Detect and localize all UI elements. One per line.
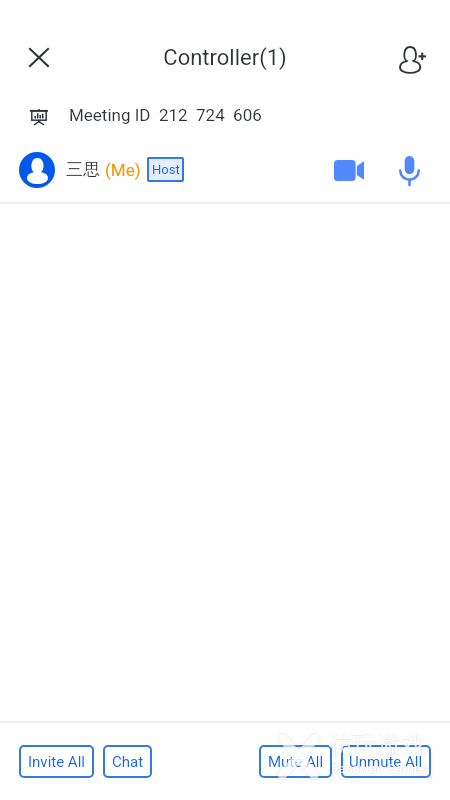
- button[interactable]: Add participant: [392, 38, 434, 80]
- staticText: 仿玩游戏: [328, 730, 424, 760]
- button[interactable]: Invite All: [19, 745, 94, 778]
- staticText: Fengwan Games: [330, 760, 427, 775]
- staticText: (Me): [105, 160, 141, 180]
- button[interactable]: Chat: [103, 745, 152, 778]
- staticText: Host: [152, 162, 180, 177]
- staticText: 仿玩游戏: [328, 732, 424, 762]
- staticText: 仿玩游戏: [329, 731, 425, 761]
- staticText: 三思: [66, 159, 105, 180]
- button[interactable]: Video on: [327, 148, 371, 192]
- button[interactable]: Unmute All: [341, 745, 431, 778]
- staticText: Unmute All: [349, 753, 423, 771]
- staticText: 仿玩游戏: [330, 732, 426, 762]
- staticText: Chat: [112, 753, 144, 771]
- staticText: Fengwan Games: [332, 760, 429, 775]
- staticText: Fengwan Games: [331, 761, 428, 776]
- staticText: 仿玩游戏: [330, 730, 426, 760]
- button[interactable]: Mute All: [259, 745, 332, 778]
- staticText: Fengwan Games: [332, 762, 429, 777]
- staticText: Controller(1): [0, 45, 450, 71]
- button[interactable]: 三思: [0, 141, 450, 198]
- staticText: Mute All: [268, 753, 324, 771]
- button[interactable]: Microphone on: [387, 148, 431, 192]
- staticText: Invite All: [28, 753, 85, 771]
- button[interactable]: Close: [18, 37, 59, 78]
- staticText: Fengwan Games: [330, 762, 427, 777]
- staticText: Meeting ID 212 724 606: [69, 105, 262, 125]
